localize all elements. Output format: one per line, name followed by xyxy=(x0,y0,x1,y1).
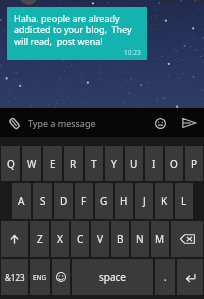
button[interactable]: Backspace xyxy=(171,221,203,257)
button[interactable]: Type a message xyxy=(28,108,146,137)
button[interactable]: Z xyxy=(30,221,49,257)
button[interactable]: . xyxy=(155,259,175,295)
button[interactable]: Attach file xyxy=(0,109,28,137)
staticText: T xyxy=(91,157,97,171)
button[interactable]: D xyxy=(54,183,73,219)
staticText: &123 xyxy=(5,272,25,283)
staticText: . xyxy=(164,270,167,284)
button[interactable]: V xyxy=(91,221,109,257)
button[interactable]: F xyxy=(75,183,93,219)
staticText: I xyxy=(152,157,156,171)
staticText: F xyxy=(81,194,87,208)
staticText: R xyxy=(70,157,77,171)
staticText: E xyxy=(50,157,56,171)
staticText: N xyxy=(136,232,144,246)
staticText: V xyxy=(97,232,103,246)
staticText: L xyxy=(181,194,187,208)
button[interactable]: A xyxy=(12,183,31,219)
staticText: K xyxy=(161,194,168,208)
button[interactable]: Enter xyxy=(177,259,203,295)
button[interactable]: X xyxy=(51,221,69,257)
button[interactable]: Q xyxy=(1,146,20,181)
staticText: M xyxy=(155,232,165,246)
button[interactable]: T xyxy=(85,146,103,181)
button[interactable]: Send xyxy=(174,108,204,137)
staticText: S xyxy=(40,194,46,208)
button[interactable]: I xyxy=(145,146,163,181)
button[interactable]: P xyxy=(185,146,203,181)
staticText: P xyxy=(191,157,198,171)
staticText: ENG xyxy=(33,273,47,282)
button[interactable]: U xyxy=(125,146,143,181)
staticText: Q xyxy=(7,157,15,171)
button[interactable]: O xyxy=(165,146,183,181)
button[interactable]: ENG xyxy=(30,259,50,295)
button[interactable]: Shift xyxy=(1,221,28,257)
button[interactable]: J xyxy=(135,183,153,219)
staticText: Haha. people are already addicted to you… xyxy=(14,12,141,48)
staticText: space xyxy=(99,270,126,284)
button[interactable]: H xyxy=(115,183,133,219)
staticText: C xyxy=(77,232,84,246)
button[interactable]: &123 xyxy=(1,259,28,295)
button[interactable]: S xyxy=(33,183,52,219)
button[interactable]: R xyxy=(64,146,83,181)
button[interactable]: K xyxy=(155,183,173,219)
button[interactable]: N xyxy=(131,221,149,257)
staticText: U xyxy=(130,157,138,171)
button[interactable]: M xyxy=(151,221,169,257)
button[interactable]: space xyxy=(72,259,153,295)
staticText: 10:23 xyxy=(124,48,141,57)
button[interactable]: Y xyxy=(105,146,123,181)
staticText: G xyxy=(100,194,108,208)
button[interactable]: W xyxy=(22,146,41,181)
staticText: B xyxy=(117,232,124,246)
staticText: A xyxy=(18,194,25,208)
button[interactable]: L xyxy=(175,183,193,219)
button[interactable]: E xyxy=(43,146,62,181)
staticText: X xyxy=(57,232,63,246)
staticText: H xyxy=(120,194,128,208)
staticText: O xyxy=(170,157,178,171)
button[interactable]: Haha. people are already addicted to you… xyxy=(7,7,147,60)
staticText: Z xyxy=(37,232,43,246)
button[interactable]: Emoji keyboard xyxy=(52,259,70,295)
button[interactable]: Emoji xyxy=(146,109,174,137)
button[interactable]: G xyxy=(95,183,113,219)
staticText: W xyxy=(27,157,37,171)
staticText: D xyxy=(60,194,68,208)
staticText: Y xyxy=(111,157,117,171)
staticText: J xyxy=(143,194,146,208)
button[interactable]: C xyxy=(71,221,89,257)
button[interactable]: B xyxy=(111,221,129,257)
staticText: Type a message xyxy=(28,117,96,129)
